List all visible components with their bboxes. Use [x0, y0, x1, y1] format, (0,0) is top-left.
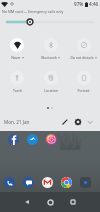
- button[interactable]: Brightness: [0, 16, 100, 28]
- staticText: Location: [44, 88, 58, 93]
- button[interactable]: Phone: [3, 176, 15, 188]
- staticText: Bluetooth: [41, 55, 57, 60]
- button[interactable]: Location: [34, 87, 67, 93]
- button[interactable]: Instagram: [45, 133, 57, 145]
- button[interactable]: Messenger: [26, 133, 38, 145]
- button[interactable]: Facebook: [7, 133, 19, 145]
- button[interactable]: Bluetooth: [34, 54, 67, 60]
- staticText: Do not disturb: [70, 55, 94, 60]
- staticText: Naver: [11, 55, 21, 60]
- staticText: 97%: [74, 1, 84, 7]
- button[interactable]: Edit: [60, 117, 70, 127]
- button[interactable]: Gmail: [41, 176, 53, 188]
- button[interactable]: Settings: [73, 117, 83, 127]
- staticText: Mon, 21 Jan: [4, 119, 30, 125]
- button[interactable]: Torch: [0, 87, 34, 93]
- staticText: Portrait: [77, 88, 90, 93]
- button[interactable]: Messages: [22, 176, 34, 188]
- button[interactable]: Portrait: [67, 87, 100, 93]
- staticText: Torch: [13, 88, 22, 93]
- button[interactable]: Chrome: [60, 176, 72, 188]
- staticText: 4:46: [89, 1, 99, 7]
- button[interactable]: Do not disturb: [67, 54, 100, 60]
- button[interactable]: Collapse: [85, 117, 95, 127]
- button[interactable]: Camera: [79, 176, 91, 188]
- button[interactable]: Home: [40, 192, 60, 212]
- button[interactable]: Naver: [0, 54, 34, 60]
- staticText: No SIM card — Emergency calls only: [2, 9, 64, 14]
- button[interactable]: Back: [17, 192, 37, 212]
- button[interactable]: Recents: [63, 192, 83, 212]
